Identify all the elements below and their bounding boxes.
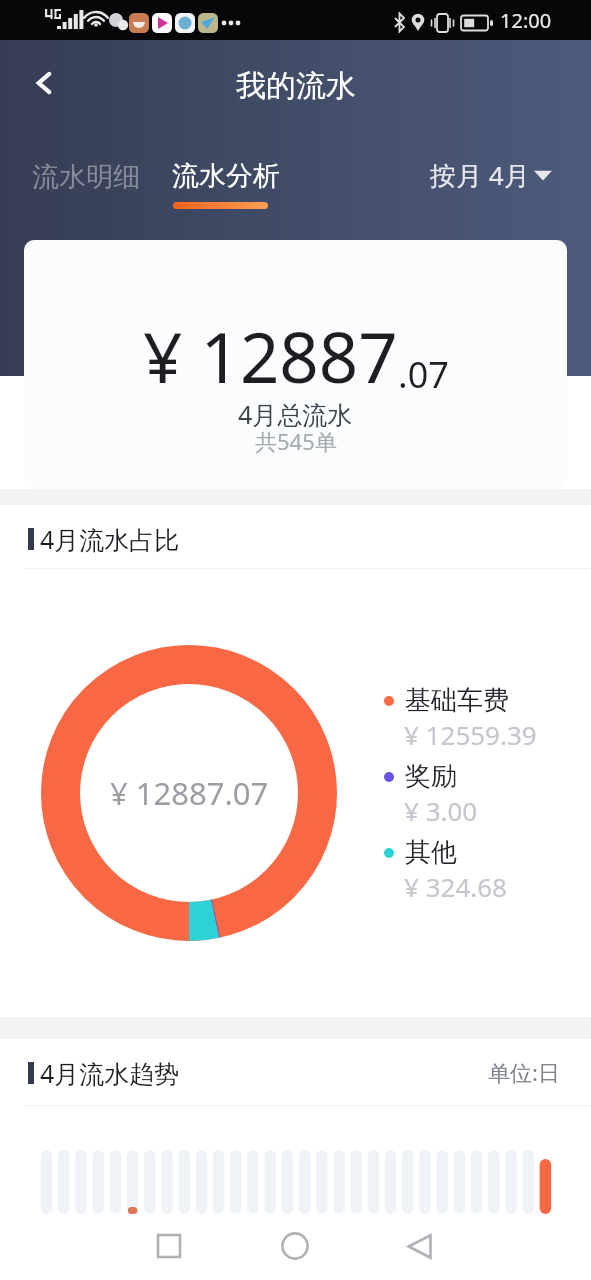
staticText: .07 (398, 350, 449, 399)
button[interactable]: Recent apps (141, 1218, 197, 1274)
button[interactable]: Home (267, 1218, 323, 1274)
staticText: 12:00 (500, 7, 552, 34)
staticText: 共545单 (255, 426, 337, 456)
staticText: 奖励 (405, 760, 457, 793)
button[interactable]: 流水分析 (172, 159, 280, 209)
staticText: ¥ 12559.39 (404, 717, 537, 752)
staticText: ¥ 12887 (143, 309, 398, 403)
staticText: 基础车费 (405, 684, 509, 717)
staticText: 其他 (405, 836, 457, 869)
staticText: 单位:日 (488, 1057, 560, 1087)
button[interactable]: 流水明细 (32, 160, 140, 194)
button[interactable]: Back (392, 1218, 448, 1274)
staticText: 4月流水趋势 (40, 1056, 180, 1090)
staticText: 流水分析 (172, 159, 280, 193)
staticText: ¥ 3.00 (404, 793, 478, 828)
staticText: 按月 4月 (430, 157, 530, 193)
button[interactable]: Back (20, 58, 68, 106)
staticText: ¥ 324.68 (404, 869, 507, 904)
staticText: ¥ 12887.07 (110, 772, 269, 814)
staticText: 4月流水占比 (40, 522, 180, 556)
staticText: 我的流水 (236, 67, 356, 105)
staticText: 4月总流水 (238, 397, 353, 431)
staticText: 流水明细 (32, 160, 140, 194)
button[interactable]: 按月 4月 (430, 157, 552, 193)
